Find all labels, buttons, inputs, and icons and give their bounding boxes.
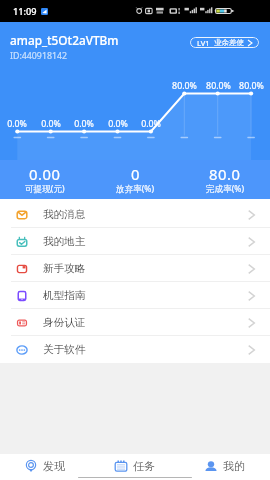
staticText: 身份认证: [43, 316, 86, 329]
button[interactable]: 我的地主: [0, 228, 270, 255]
staticText: 我的地主: [43, 235, 86, 248]
button[interactable]: 我的消息: [0, 201, 270, 228]
staticText: 0.0%: [74, 118, 94, 130]
button[interactable]: 发现: [0, 457, 90, 475]
staticText: 80.0: [209, 164, 241, 184]
staticText: LV1: [197, 38, 210, 48]
staticText: amap_t5Ot2aVTBm: [10, 32, 119, 48]
staticText: 放弃率(%): [116, 183, 155, 195]
staticText: 可提现(元): [25, 183, 65, 195]
staticText: 我的消息: [43, 208, 86, 221]
button[interactable]: 0.00: [0, 160, 90, 199]
staticText: 关于软件: [43, 343, 86, 356]
button[interactable]: 我的: [180, 457, 270, 475]
button[interactable]: 新手攻略: [0, 255, 270, 282]
button[interactable]: 机型指南: [0, 282, 270, 309]
staticText: 完成率(%): [206, 183, 245, 195]
staticText: 机型指南: [43, 289, 86, 302]
staticText: 0.0%: [141, 118, 161, 130]
button[interactable]: 80.0: [180, 160, 270, 199]
staticText: 0.0%: [41, 118, 61, 130]
staticText: 11:09: [13, 5, 37, 18]
staticText: 我的: [223, 459, 245, 473]
button[interactable]: LV1: [190, 37, 259, 48]
staticText: 0.0%: [108, 118, 128, 130]
staticText: 发现: [43, 459, 65, 473]
staticText: 0.0%: [7, 118, 27, 130]
button[interactable]: 任务: [90, 457, 180, 475]
staticText: 80.0%: [206, 80, 231, 92]
staticText: 80.0%: [239, 80, 264, 92]
staticText: 新手攻略: [43, 262, 86, 275]
button[interactable]: 0: [90, 160, 180, 199]
button[interactable]: 身份认证: [0, 309, 270, 336]
staticText: 80.0%: [172, 80, 197, 92]
button[interactable]: 关于软件: [0, 336, 270, 363]
staticText: ID:440918142: [10, 50, 68, 62]
staticText: 业余差使: [214, 38, 244, 47]
staticText: 0.00: [29, 164, 61, 184]
staticText: 任务: [133, 459, 155, 473]
staticText: 0: [131, 164, 140, 184]
